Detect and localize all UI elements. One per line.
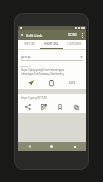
- staticText: https://play.google.com/store/apps /deve…: [21, 68, 65, 75]
- button[interactable]: QR code: [36, 102, 52, 112]
- staticText: SHORT URL: [44, 42, 59, 46]
- button[interactable]: Close: [20, 33, 24, 37]
- button[interactable]: Recents: [63, 142, 86, 151]
- button[interactable]: Home: [40, 142, 63, 151]
- button[interactable]: Back: [18, 142, 40, 151]
- button[interactable]: Send: [21, 77, 41, 88]
- button[interactable]: Paste: [41, 77, 62, 88]
- button[interactable]: Share: [20, 102, 36, 112]
- staticText: Edit Link: [26, 33, 43, 38]
- button[interactable]: Bookmark: [52, 102, 68, 112]
- staticText: GO: [69, 80, 76, 85]
- button[interactable]: GO: [62, 77, 83, 88]
- staticText: DONE: [68, 33, 78, 37]
- staticText: https://goo.gl/KT7Z61: [21, 96, 48, 100]
- button[interactable]: SHORT URL: [40, 40, 63, 48]
- button[interactable]: group: [21, 53, 83, 60]
- button[interactable]: DONE: [67, 33, 79, 37]
- staticText: CUSTOMIZE: [67, 42, 82, 46]
- button[interactable]: CUSTOMIZE: [63, 40, 86, 48]
- staticText: short url: [21, 64, 31, 67]
- staticText: group: [21, 54, 31, 59]
- staticText: HISTORY: [24, 42, 35, 46]
- button[interactable]: More options: [81, 32, 84, 39]
- button[interactable]: Copy: [68, 102, 84, 112]
- button[interactable]: HISTORY: [18, 40, 40, 48]
